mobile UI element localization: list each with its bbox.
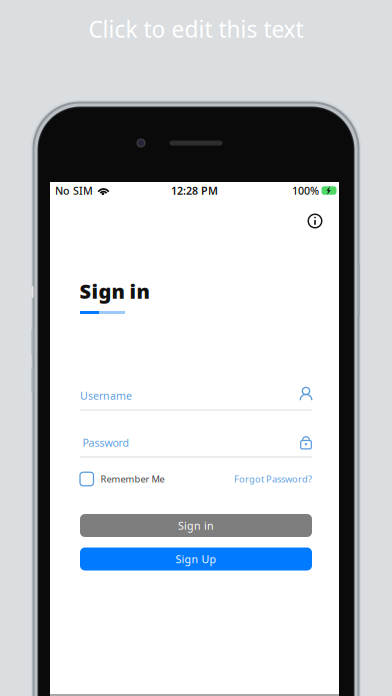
- staticText: Forgot Password?: [234, 473, 312, 485]
- staticText: Username: [80, 388, 132, 403]
- staticText: Sign Up: [175, 552, 216, 566]
- staticText: Sign in: [79, 278, 149, 304]
- button[interactable]: Forgot Password?: [234, 469, 312, 489]
- staticText: 100%: [292, 183, 319, 198]
- button[interactable]: Sign in: [80, 514, 312, 537]
- staticText: No SIM: [55, 183, 93, 198]
- staticText: 12:28 PM: [171, 183, 218, 198]
- button[interactable]: Information: [302, 208, 328, 234]
- staticText: Sign in: [178, 518, 214, 533]
- staticText: Remember Me: [100, 473, 164, 485]
- staticText: Click to edit this text: [88, 14, 303, 44]
- button[interactable]: Remember Me: [80, 469, 164, 489]
- staticText: Password: [82, 435, 129, 450]
- button[interactable]: Sign Up: [80, 547, 312, 570]
